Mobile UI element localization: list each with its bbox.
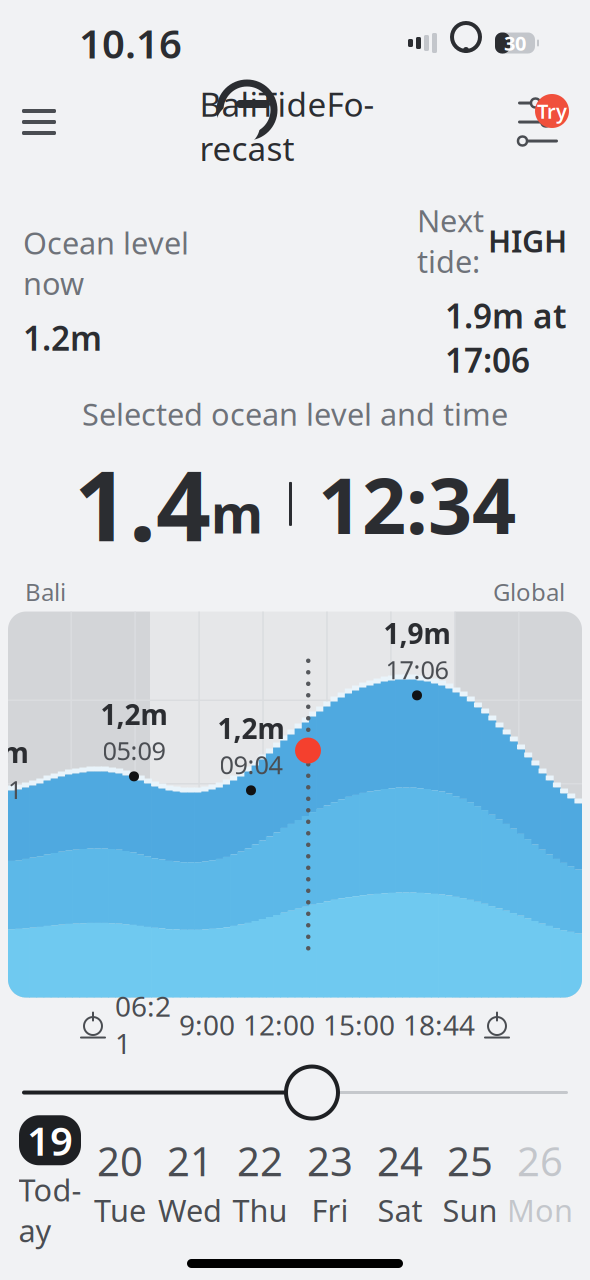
button[interactable]: 19: [15, 1137, 85, 1229]
staticText: 30: [504, 30, 526, 56]
staticText: 20: [97, 1134, 143, 1187]
staticText: BaliTideForecast: [199, 82, 374, 170]
staticText: Global: [493, 576, 565, 608]
button[interactable]: Menu: [11, 94, 67, 150]
staticText: 9:00: [179, 1006, 235, 1043]
staticText: 1,2m: [217, 709, 284, 747]
staticText: Bali: [25, 576, 66, 608]
staticText: 19: [27, 1114, 73, 1167]
staticText: 09:04: [219, 748, 282, 781]
staticText: HIGH: [488, 220, 567, 261]
staticText: Thu: [232, 1190, 287, 1230]
staticText: 1,2m: [100, 695, 167, 733]
staticText: Fri: [311, 1190, 348, 1230]
button[interactable]: 23: [295, 1137, 365, 1229]
staticText: Selected ocean level and time: [82, 393, 508, 434]
staticText: 15:00: [323, 1006, 395, 1043]
staticText: 21: [167, 1134, 213, 1187]
staticText: Tue: [94, 1190, 146, 1230]
button[interactable]: Time slider: [22, 1059, 568, 1125]
button[interactable]: 26: [505, 1137, 575, 1229]
staticText: Ocean level now: [23, 222, 189, 303]
staticText: 10.16: [79, 16, 182, 69]
staticText: Mon: [507, 1190, 573, 1230]
staticText: 22: [237, 1134, 283, 1187]
staticText: m: [211, 477, 263, 548]
staticText: 05:09: [102, 734, 165, 767]
staticText: 23: [307, 1134, 353, 1187]
button[interactable]: 24: [365, 1137, 435, 1229]
staticText: Sat: [377, 1190, 422, 1230]
staticText: 1: [8, 773, 22, 806]
staticText: Wed: [158, 1190, 222, 1230]
staticText: Try: [537, 98, 567, 124]
staticText: 1.9m at 17:06: [445, 293, 567, 382]
button[interactable]: 22: [225, 1137, 295, 1229]
staticText: Today: [18, 1169, 81, 1251]
staticText: m: [1, 733, 28, 771]
staticText: 26: [517, 1134, 563, 1187]
staticText: 1.4: [74, 440, 211, 568]
staticText: 1,9m: [383, 614, 450, 652]
staticText: 17:06: [385, 653, 448, 686]
staticText: 1.2m: [23, 316, 102, 360]
staticText: 18:44: [403, 1006, 475, 1043]
button[interactable]: Settings: [507, 93, 569, 151]
button[interactable]: 25: [435, 1137, 505, 1229]
staticText: 12:34: [318, 453, 516, 555]
staticText: 12:00: [243, 1006, 315, 1043]
staticText: Sun: [442, 1190, 497, 1230]
staticText: 06:21: [115, 987, 171, 1062]
button[interactable]: 21: [155, 1137, 225, 1229]
staticText: 25: [447, 1134, 493, 1187]
staticText: 24: [377, 1134, 423, 1187]
button[interactable]: 20: [85, 1137, 155, 1229]
staticText: Next tide:: [417, 200, 488, 281]
